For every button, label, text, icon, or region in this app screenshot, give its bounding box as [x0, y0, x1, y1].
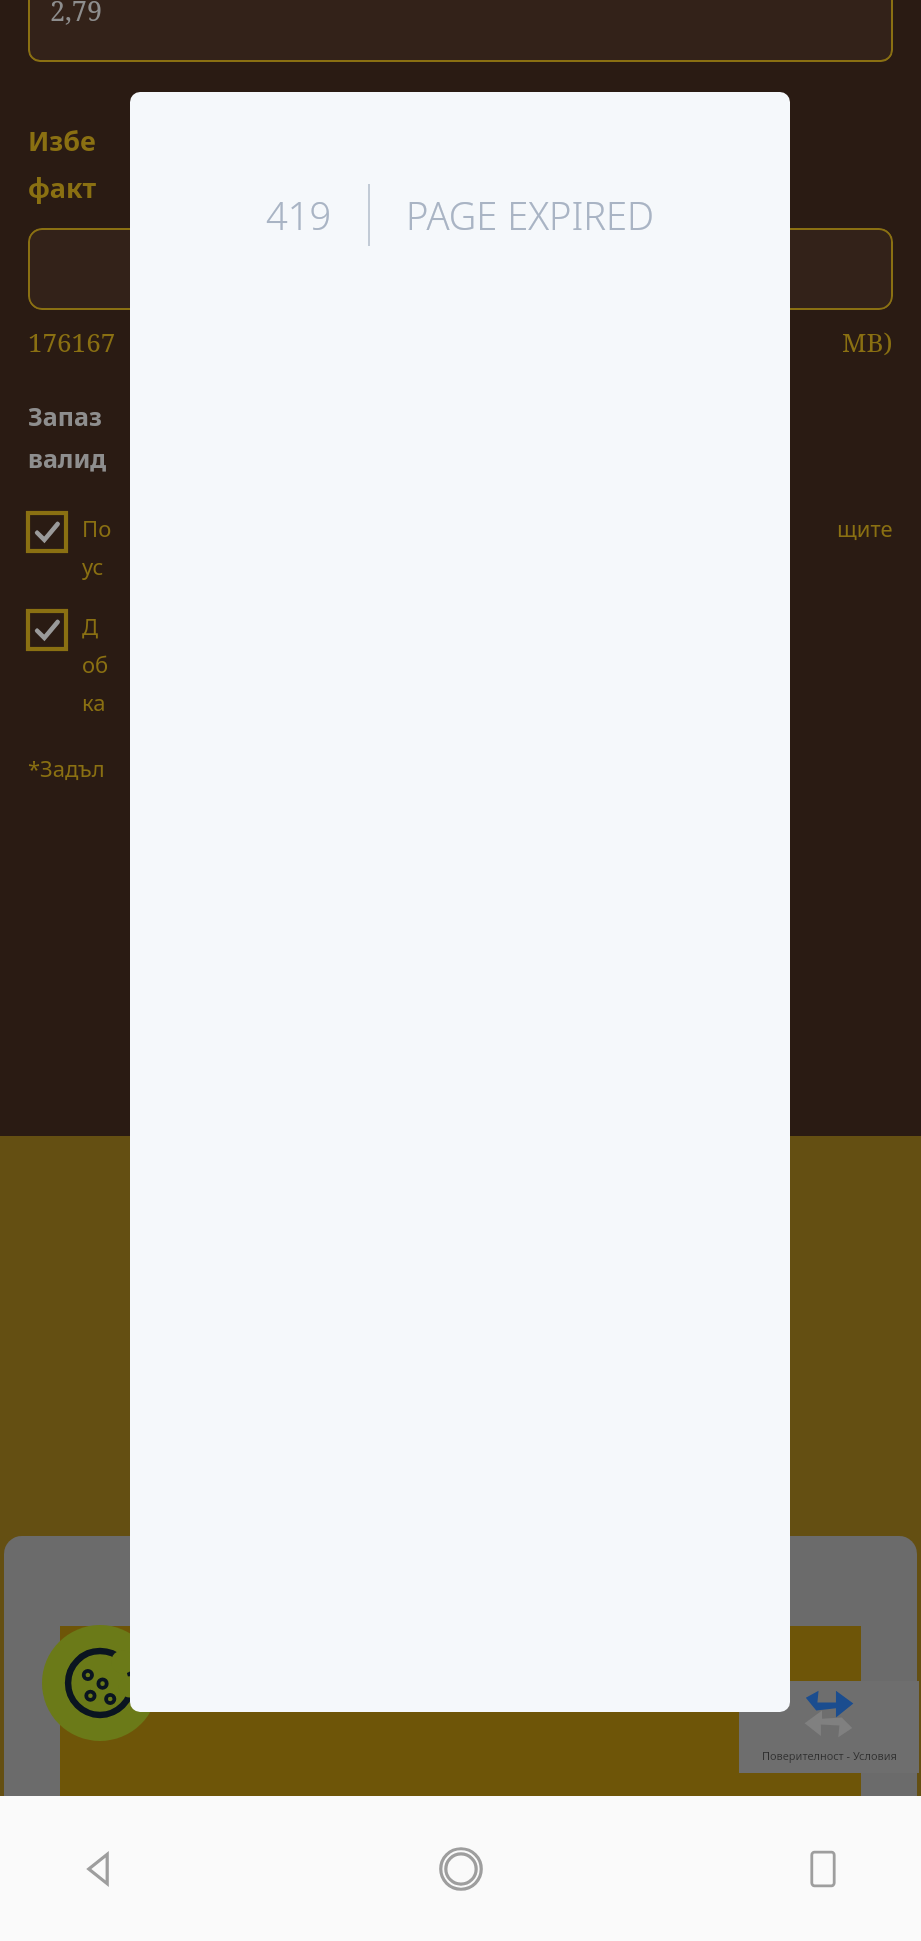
staticText: 2,79: [50, 0, 103, 29]
button[interactable]: [28, 228, 893, 310]
staticText: об: [82, 649, 109, 679]
staticText: ка: [82, 687, 106, 717]
staticText: Атанаска: [380, 1670, 541, 1716]
staticText: ус: [82, 551, 104, 581]
staticText: Избе: [28, 122, 96, 159]
button[interactable]: Д: [28, 611, 921, 717]
staticText: валид: [28, 441, 107, 475]
staticText: MB): [842, 324, 893, 359]
staticText: По: [82, 513, 112, 543]
button[interactable]: Cookie settings: [42, 1625, 158, 1741]
staticText: Д: [82, 611, 99, 641]
staticText: факт: [28, 169, 97, 206]
staticText: PAGE EXPIRED: [406, 189, 655, 241]
staticText: Запаз: [28, 399, 102, 433]
staticText: *Задъл: [28, 753, 105, 783]
staticText: Поверителност - Условия: [762, 1748, 897, 1763]
button[interactable]: Recents: [785, 1831, 861, 1907]
button[interactable]: 2,79: [28, 0, 893, 62]
button[interactable]: Back: [60, 1831, 136, 1907]
button[interactable]: Home: [423, 1831, 499, 1907]
staticText: 419: [266, 189, 332, 241]
staticText: щите: [837, 513, 893, 543]
staticText: 176167: [28, 324, 116, 359]
button[interactable]: reCAPTCHA: [739, 1681, 919, 1773]
button[interactable]: По: [28, 513, 921, 581]
